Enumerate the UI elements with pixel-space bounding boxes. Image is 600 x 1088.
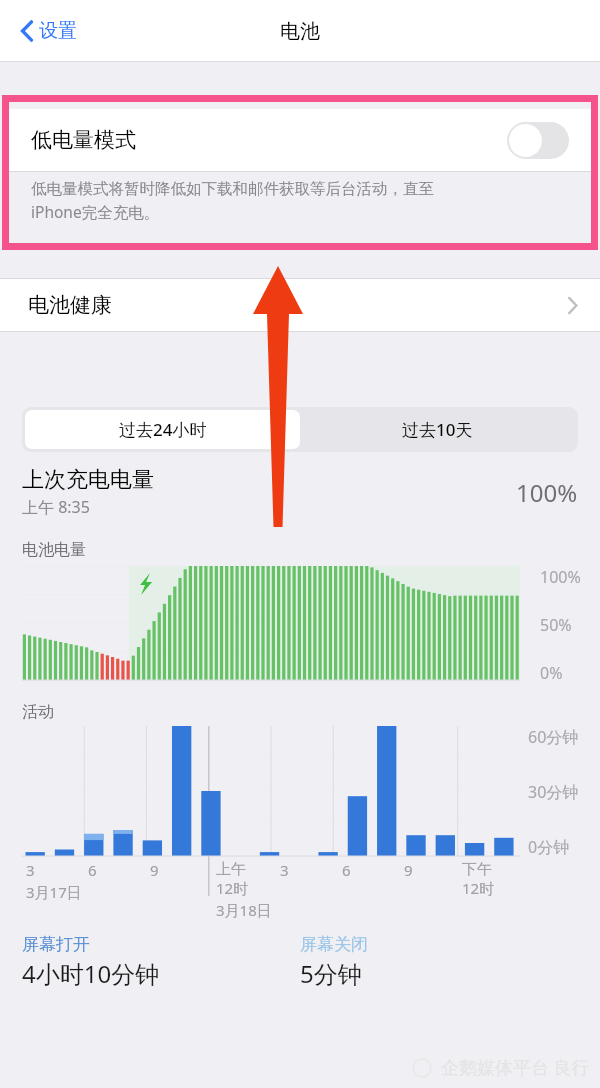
staticText: 企鹅媒体平台 良行 xyxy=(441,1055,590,1080)
staticText: 过去24小时 xyxy=(119,418,207,441)
staticText: 活动 xyxy=(22,702,54,722)
staticText: 电池 xyxy=(280,19,320,44)
staticText: 9 xyxy=(404,860,413,880)
staticText: 0% xyxy=(540,662,563,684)
staticText: 上次充电电量 xyxy=(22,466,154,494)
button[interactable]: 低电量模式 xyxy=(9,109,591,171)
staticText: 4小时10分钟 xyxy=(22,957,160,990)
staticText: 3月17日 xyxy=(26,882,82,902)
staticText: 5分钟 xyxy=(300,957,362,990)
staticText: 3月18日 xyxy=(216,900,272,920)
staticText: 低电量模式将暂时降低如下载和邮件获取等后台活动，直至 iPhone完全充电。 xyxy=(31,179,434,223)
staticText: 100% xyxy=(516,476,578,509)
staticText: 0分钟 xyxy=(528,836,570,858)
staticText: 电池电量 xyxy=(22,540,86,560)
staticText: 过去10天 xyxy=(402,418,473,441)
staticText: 100% xyxy=(540,566,581,588)
button[interactable]: 低电量模式开关 xyxy=(507,122,569,159)
staticText: 60分钟 xyxy=(528,726,579,748)
staticText: 屏幕打开 xyxy=(22,934,90,955)
button[interactable]: 过去10天 xyxy=(300,410,575,449)
staticText: 3 xyxy=(280,860,289,880)
staticText: 9 xyxy=(150,860,159,880)
staticText: 3 xyxy=(26,860,35,880)
staticText: 低电量模式 xyxy=(31,127,507,153)
button[interactable]: 电池健康 xyxy=(0,279,600,331)
staticText: 下午 12时 xyxy=(462,860,495,898)
staticText: 6 xyxy=(342,860,351,880)
button[interactable]: 过去24小时 xyxy=(25,410,300,449)
staticText: 上午 12时 xyxy=(216,860,249,898)
staticText: 30分钟 xyxy=(528,781,579,803)
button[interactable]: 设置 xyxy=(16,13,81,49)
staticText: 6 xyxy=(88,860,97,880)
staticText: 电池健康 xyxy=(28,292,567,318)
staticText: 屏幕关闭 xyxy=(300,934,368,955)
staticText: 设置 xyxy=(39,19,77,43)
staticText: 上午 8:35 xyxy=(22,496,90,518)
staticText: 50% xyxy=(540,614,572,636)
